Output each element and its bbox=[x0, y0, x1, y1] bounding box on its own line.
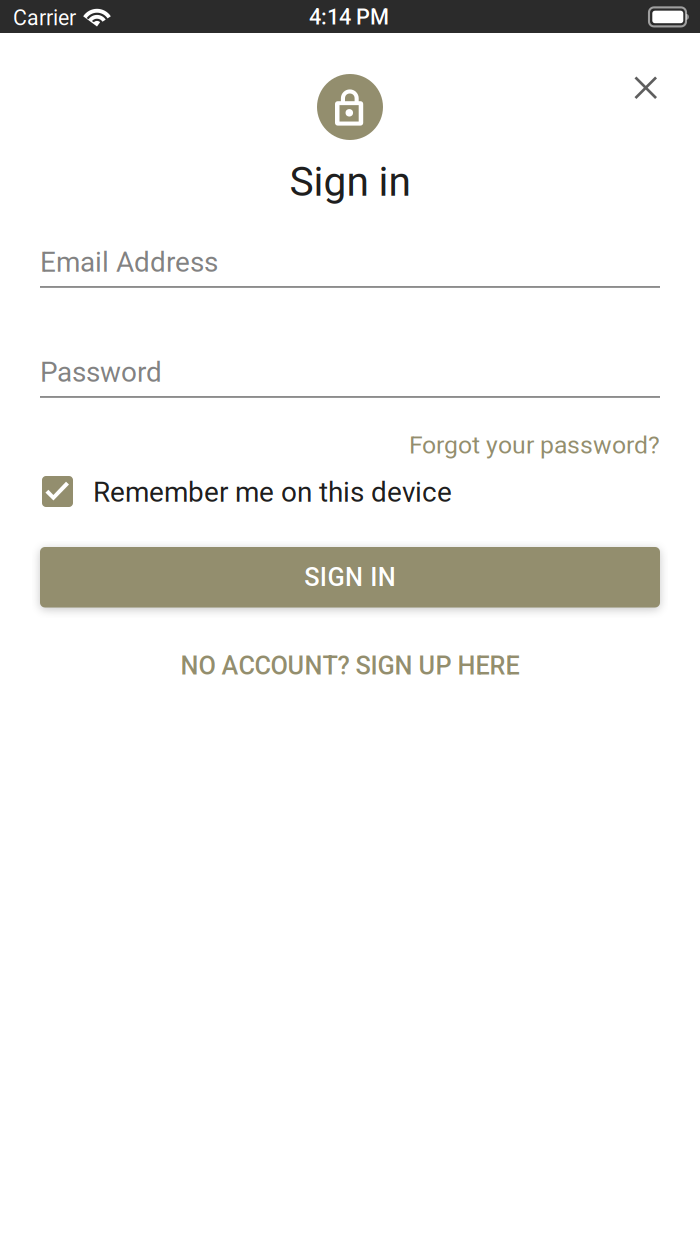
button[interactable]: NO ACCOUNT? SIGN UP HERE bbox=[0, 651, 700, 681]
staticText: NO ACCOUNT? SIGN UP HERE bbox=[180, 651, 519, 681]
staticText: Remember me on this device bbox=[93, 476, 452, 509]
button[interactable]: Email Address bbox=[40, 246, 660, 288]
staticText: Password bbox=[40, 356, 162, 389]
staticText: Email Address bbox=[40, 246, 218, 279]
button[interactable]: Remember me on this device bbox=[42, 476, 452, 507]
button[interactable]: Close bbox=[620, 62, 671, 113]
button[interactable]: Forgot your password? bbox=[240, 430, 660, 460]
staticText: Forgot your password? bbox=[409, 430, 660, 460]
staticText: SIGN IN bbox=[304, 562, 396, 592]
button[interactable]: Password bbox=[40, 356, 660, 398]
staticText: Carrier bbox=[13, 5, 76, 30]
staticText: 4:14 PM bbox=[309, 4, 389, 30]
staticText: Sign in bbox=[289, 158, 410, 206]
button[interactable]: SIGN IN bbox=[40, 547, 660, 607]
